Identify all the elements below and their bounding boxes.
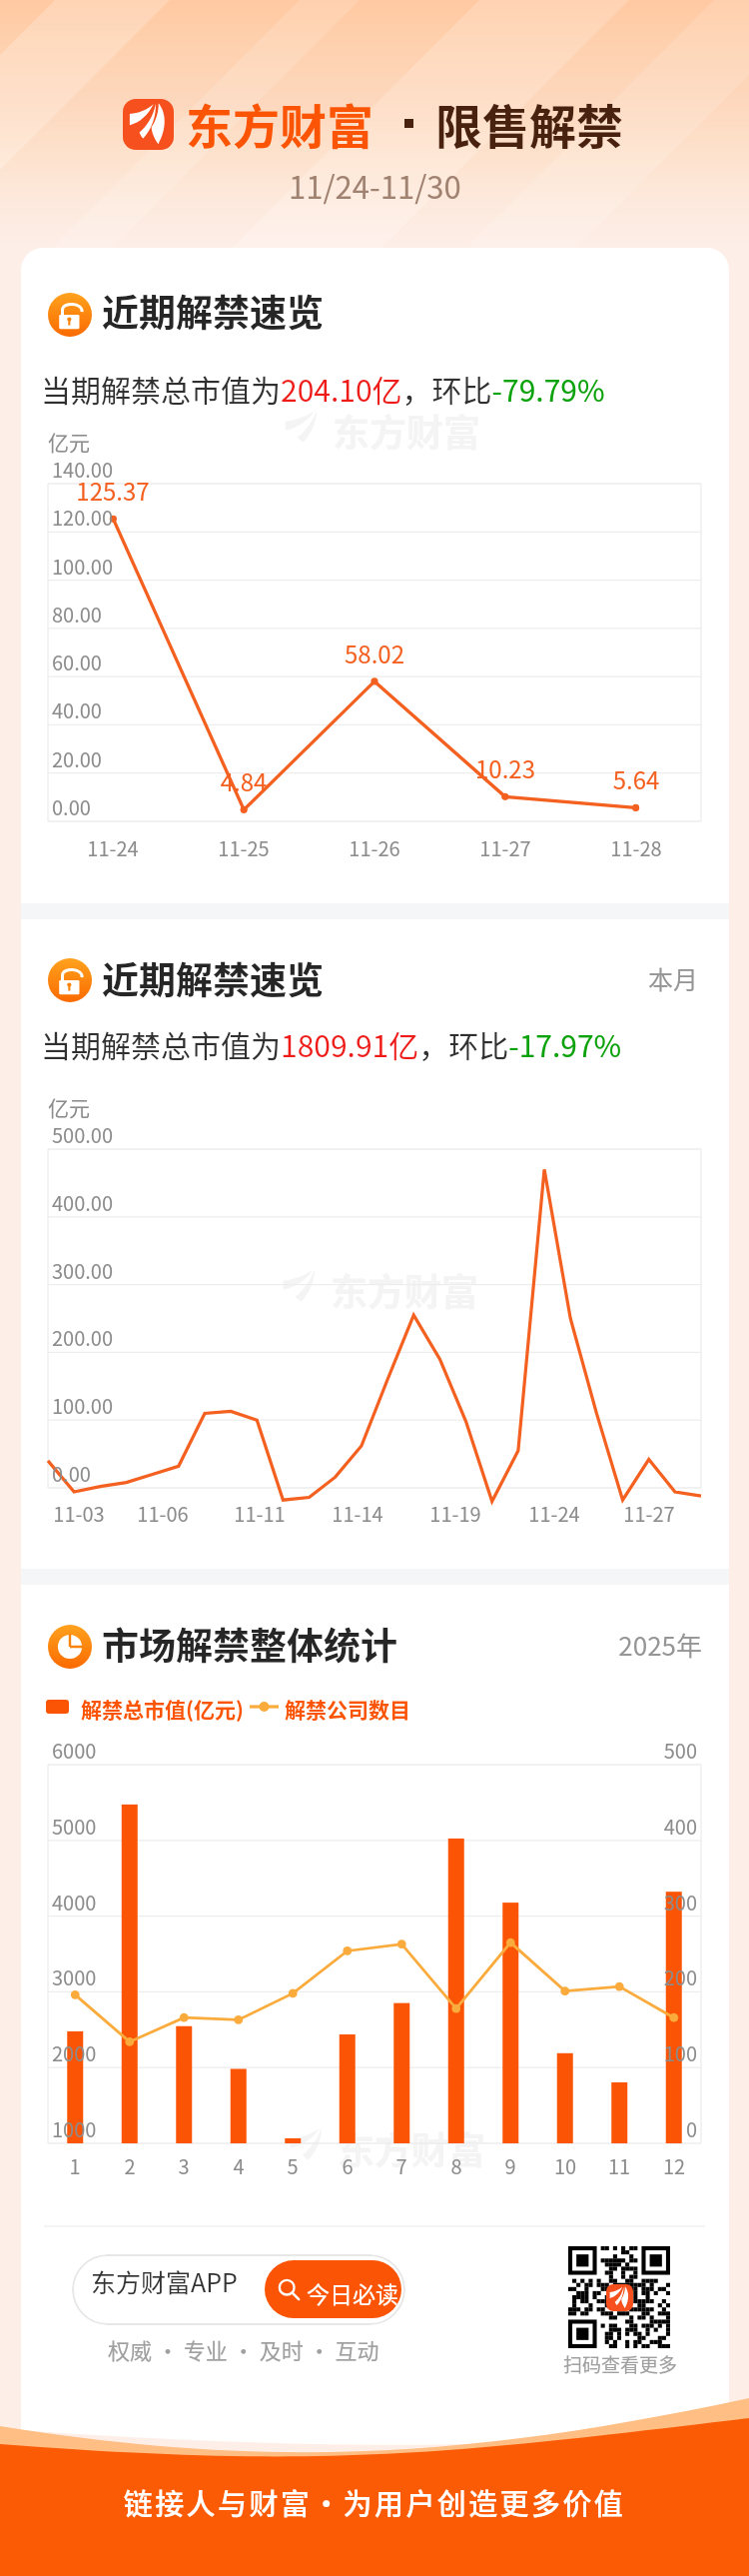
staticText: 东方财富APP bbox=[91, 2263, 238, 2299]
button[interactable]: 东方财富APP bbox=[72, 2254, 405, 2325]
staticText: 100 bbox=[397, 2038, 697, 2067]
staticText: 11-27 bbox=[415, 833, 595, 862]
staticText: 8 bbox=[367, 2151, 546, 2180]
staticText: 东方财富 bbox=[186, 89, 374, 157]
staticText: 当期解禁总市值为1809.91亿，环比-17.97% bbox=[41, 1022, 622, 1065]
staticText: 1 bbox=[0, 2151, 165, 2180]
staticText: 东方财富 bbox=[331, 1263, 478, 1317]
staticText: 2000 bbox=[52, 2038, 97, 2067]
staticText: 权威 · 专业 · 及时 · 互动 bbox=[108, 2333, 379, 2365]
staticText: 5000 bbox=[52, 1812, 97, 1841]
staticText: 限售解禁 bbox=[435, 89, 623, 157]
staticText: 200.00 bbox=[52, 1323, 114, 1352]
staticText: 100.00 bbox=[52, 552, 114, 581]
staticText: 近期解禁速览 bbox=[102, 951, 324, 1005]
staticText: 5 bbox=[203, 2151, 382, 2180]
staticText: 4 bbox=[149, 2151, 329, 2180]
staticText: 60.00 bbox=[52, 647, 102, 676]
staticText: 500.00 bbox=[52, 1120, 114, 1149]
staticText: 11 bbox=[529, 2151, 709, 2180]
staticText: 0 bbox=[397, 2114, 697, 2143]
staticText: 3 bbox=[94, 2151, 274, 2180]
staticText: 11-28 bbox=[546, 833, 726, 862]
staticText: 11-06 bbox=[73, 1499, 253, 1528]
staticText: 400 bbox=[397, 1812, 697, 1841]
staticText: 2 bbox=[40, 2151, 220, 2180]
staticText: 100.00 bbox=[52, 1391, 114, 1420]
staticText: 10 bbox=[475, 2151, 655, 2180]
staticText: 9 bbox=[420, 2151, 600, 2180]
staticText: 400.00 bbox=[52, 1188, 114, 1217]
staticText: 125.37 bbox=[23, 473, 203, 508]
staticText: 本月 bbox=[398, 960, 698, 996]
staticText: 120.00 bbox=[52, 503, 114, 532]
staticText: 东方财富 bbox=[338, 2121, 485, 2175]
staticText: 4.84 bbox=[154, 763, 334, 798]
staticText: 1000 bbox=[52, 2114, 97, 2143]
staticText: 解禁总市值(亿元) bbox=[81, 1694, 244, 1724]
staticText: 今日必读 bbox=[307, 2276, 398, 2309]
staticText: 80.00 bbox=[52, 600, 102, 629]
button[interactable]: 解禁 bbox=[48, 293, 92, 337]
staticText: 3000 bbox=[52, 1962, 97, 1991]
staticText: 解禁公司数目 bbox=[285, 1694, 410, 1724]
staticText: 11/24-11/30 bbox=[289, 163, 461, 208]
staticText: 20.00 bbox=[52, 744, 102, 773]
staticText: 7 bbox=[312, 2151, 491, 2180]
staticText: 11-24 bbox=[23, 833, 203, 862]
staticText: 200 bbox=[397, 1962, 697, 1991]
staticText: 500 bbox=[397, 1736, 697, 1765]
staticText: 11-26 bbox=[285, 833, 464, 862]
staticText: 近期解禁速览 bbox=[102, 284, 324, 338]
staticText: 5.64 bbox=[546, 761, 726, 796]
staticText: 11-24 bbox=[464, 1499, 644, 1528]
staticText: 6 bbox=[258, 2151, 437, 2180]
staticText: 2025年 bbox=[402, 1626, 702, 1664]
staticText: 东方财富 bbox=[333, 404, 480, 458]
staticText: 12 bbox=[584, 2151, 749, 2180]
staticText: 0.00 bbox=[52, 792, 91, 821]
staticText: 链接人与财富·为用户创造更多价值 bbox=[0, 2481, 749, 2523]
staticText: 扫码查看更多 bbox=[563, 2350, 678, 2378]
staticText: 11-14 bbox=[268, 1499, 447, 1528]
staticText: 300.00 bbox=[52, 1256, 114, 1285]
staticText: 58.02 bbox=[285, 636, 464, 670]
staticText: 10.23 bbox=[415, 750, 595, 785]
staticText: 6000 bbox=[52, 1736, 97, 1765]
staticText: 4000 bbox=[52, 1888, 97, 1917]
staticText: 300 bbox=[397, 1888, 697, 1917]
button[interactable]: 解禁 bbox=[48, 958, 92, 1002]
staticText: 市场解禁整体统计 bbox=[102, 1617, 397, 1671]
staticText: 当期解禁总市值为204.10亿，环比-79.79% bbox=[41, 367, 605, 410]
staticText: 11-27 bbox=[559, 1499, 739, 1528]
staticText: 亿元 bbox=[48, 1092, 90, 1122]
button[interactable]: 二维码 bbox=[568, 2246, 670, 2348]
button[interactable]: 统计 bbox=[48, 1625, 92, 1669]
staticText: 0.00 bbox=[52, 1459, 91, 1488]
staticText: 11-19 bbox=[366, 1499, 545, 1528]
staticText: 40.00 bbox=[52, 695, 102, 724]
staticText: 11-25 bbox=[154, 833, 334, 862]
staticText: 11-11 bbox=[170, 1499, 350, 1528]
staticText: 140.00 bbox=[52, 455, 114, 484]
staticText: 亿元 bbox=[48, 427, 90, 457]
staticText: 11-03 bbox=[0, 1499, 169, 1528]
